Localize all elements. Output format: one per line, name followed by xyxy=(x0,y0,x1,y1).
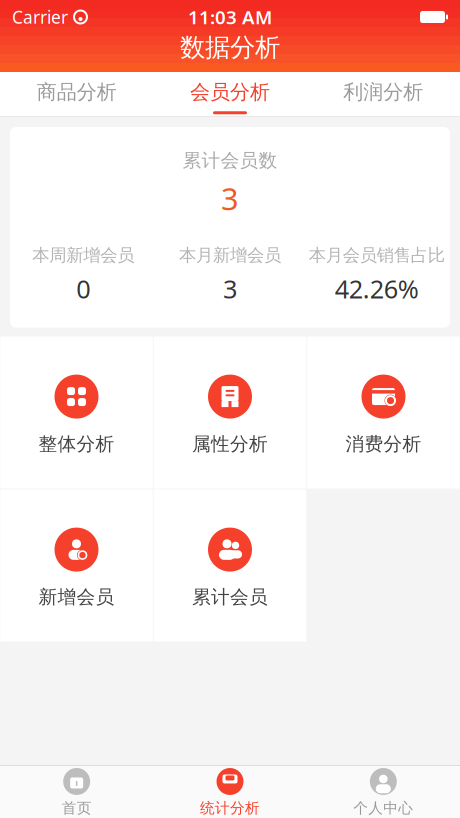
button[interactable]: 属性分析 xyxy=(154,337,306,489)
button[interactable]: 个人中心 xyxy=(307,766,460,818)
staticText: 本月会员销售占比 xyxy=(309,245,445,266)
staticText: 0 xyxy=(76,272,90,305)
button[interactable]: 整体分析 xyxy=(0,337,153,489)
staticText: 会员分析 xyxy=(190,80,270,104)
staticText: 42.26% xyxy=(335,272,419,305)
staticText: 属性分析 xyxy=(192,433,268,455)
staticText: Carrier xyxy=(12,5,68,28)
staticText: 累计会员 xyxy=(192,586,268,608)
button[interactable]: 会员分析 xyxy=(153,72,307,116)
button[interactable]: 消费分析 xyxy=(307,337,460,489)
staticText: 新增会员 xyxy=(38,586,114,608)
staticText: 个人中心 xyxy=(353,799,413,817)
button[interactable]: 利润分析 xyxy=(307,72,460,116)
staticText: 整体分析 xyxy=(38,433,114,455)
staticText: 本月新增会员 xyxy=(179,245,281,266)
button[interactable]: 商品分析 xyxy=(0,72,153,116)
staticText: 11:03 AM xyxy=(188,5,272,29)
staticText: 累计会员数 xyxy=(182,149,277,172)
staticText: 利润分析 xyxy=(343,80,423,104)
button[interactable]: 累计会员 xyxy=(154,490,306,642)
staticText: 消费分析 xyxy=(345,433,421,455)
staticText: 首页 xyxy=(62,799,92,817)
staticText: 3 xyxy=(221,178,239,219)
button[interactable]: 统计分析 xyxy=(153,766,307,818)
staticText: 3 xyxy=(223,272,237,305)
button[interactable]: 首页 xyxy=(0,766,153,818)
staticText: 统计分析 xyxy=(200,799,260,817)
staticText: 数据分析 xyxy=(180,32,280,63)
staticText: 商品分析 xyxy=(37,80,117,104)
staticText: 本周新增会员 xyxy=(32,245,134,266)
button[interactable]: 新增会员 xyxy=(0,490,153,642)
